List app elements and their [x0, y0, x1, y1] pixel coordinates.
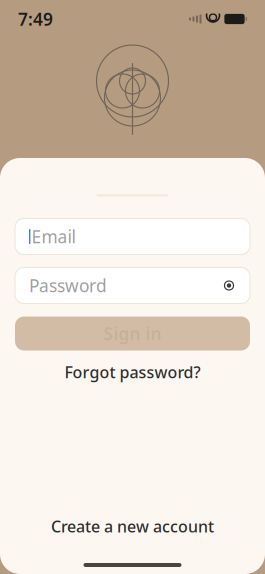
- button[interactable]: Email: [0, 218, 265, 254]
- button[interactable]: Forgot password?: [54, 354, 210, 390]
- staticText: Email: [31, 225, 75, 248]
- button[interactable]: Password: [0, 267, 265, 303]
- staticText: Forgot password?: [64, 361, 200, 383]
- button[interactable]: Sign in: [0, 316, 265, 350]
- staticText: Password: [29, 274, 107, 297]
- staticText: 7:49: [18, 7, 53, 30]
- button[interactable]: Create a new account: [37, 508, 228, 545]
- staticText: Sign in: [103, 322, 161, 345]
- staticText: Create a new account: [51, 516, 214, 537]
